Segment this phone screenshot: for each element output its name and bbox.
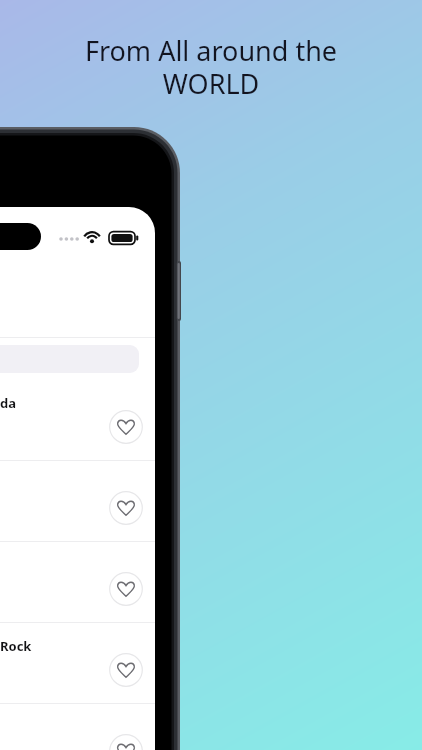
staticText: da bbox=[0, 394, 17, 412]
button[interactable]: Favorite bbox=[109, 491, 143, 525]
button[interactable]: Favorite bbox=[0, 703, 155, 750]
button[interactable]: Favorite bbox=[0, 460, 155, 541]
button[interactable]: da bbox=[0, 379, 155, 460]
button[interactable]: Favorite bbox=[109, 572, 143, 606]
button[interactable]: Favorite bbox=[109, 653, 143, 687]
button[interactable]: Favorite bbox=[0, 541, 155, 622]
staticText: Rock bbox=[0, 637, 32, 655]
button[interactable]: Rock bbox=[0, 622, 155, 703]
button[interactable]: Favorite bbox=[109, 410, 143, 444]
button[interactable]: Favorite bbox=[109, 734, 143, 750]
staticText: From All around the WORLD bbox=[0, 32, 422, 102]
